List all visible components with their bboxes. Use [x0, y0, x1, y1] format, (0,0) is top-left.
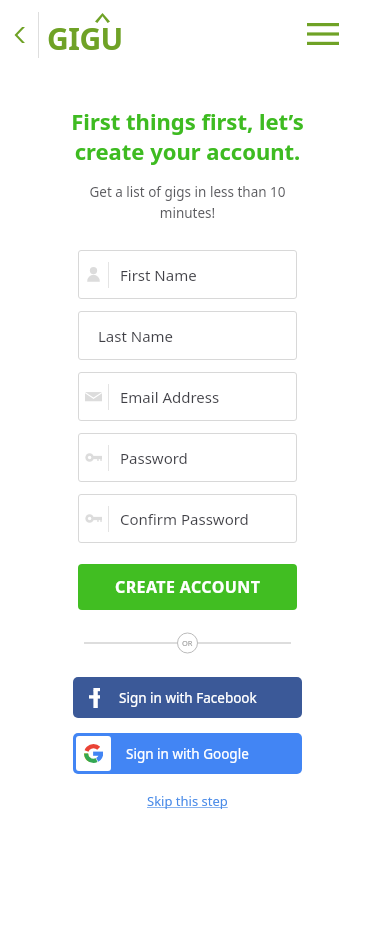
button[interactable]: Confirm Password: [78, 494, 297, 543]
staticText: First things first, let’s create your ac…: [24, 106, 351, 167]
staticText: Sign in with Facebook: [119, 689, 257, 707]
button[interactable]: Sign in with Google: [73, 733, 302, 774]
button[interactable]: Password: [78, 433, 297, 482]
button[interactable]: Email Address: [78, 372, 297, 421]
staticText: Password: [120, 448, 188, 468]
staticText: GIGUP: [47, 18, 131, 60]
staticText: Last Name: [98, 326, 174, 346]
button[interactable]: Back: [4, 18, 38, 52]
staticText: Get a list of gigs in less than 10 minut…: [36, 183, 339, 222]
button[interactable]: CREATE ACCOUNT: [78, 564, 297, 610]
staticText: First Name: [120, 265, 197, 285]
staticText: Confirm Password: [120, 509, 249, 529]
button[interactable]: Sign in with Facebook: [73, 677, 302, 718]
staticText: Skip this step: [147, 792, 228, 810]
button[interactable]: Last Name: [78, 311, 297, 360]
staticText: CREATE ACCOUNT: [115, 576, 261, 598]
button[interactable]: Menu: [300, 16, 346, 52]
staticText: Email Address: [120, 387, 220, 407]
button[interactable]: Skip this step: [139, 790, 236, 812]
staticText: Sign in with Google: [126, 745, 249, 763]
button[interactable]: First Name: [78, 250, 297, 299]
staticText: OR: [182, 638, 193, 648]
